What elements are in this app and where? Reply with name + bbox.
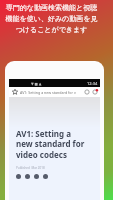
staticText: AV1: Setting a new standard for video co… (16, 128, 85, 161)
staticText: 専門的な動画検索機能と視聴 機能を使い、好みの動画を見 つけることができます (1, 3, 102, 34)
staticText: AV1: Setting a new standard for v (20, 90, 84, 95)
button[interactable]: Refresh (84, 89, 90, 95)
staticText: ▼ ■ ▲ (31, 81, 42, 86)
staticText: 12:34 (87, 81, 98, 86)
button[interactable]: Notifications (92, 89, 98, 95)
staticText: Published Mar 2018 (16, 166, 45, 170)
button[interactable]: Favorite (12, 89, 18, 95)
